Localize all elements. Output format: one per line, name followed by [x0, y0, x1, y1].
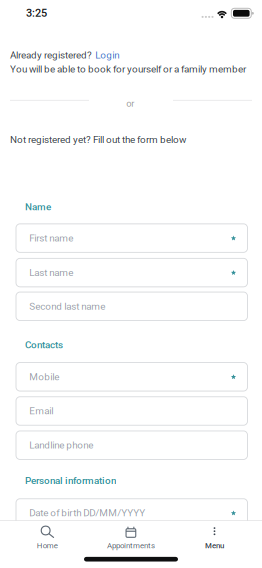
button[interactable]: Mobile: [16, 363, 247, 391]
staticText: Home: [37, 541, 58, 550]
button[interactable]: Menu: [175, 521, 262, 568]
button[interactable]: Appointments: [87, 521, 175, 568]
staticText: Personal information: [25, 475, 116, 486]
staticText: Name: [25, 201, 51, 213]
staticText: Already registered?: [10, 49, 92, 61]
staticText: You will be able to book for yourself or…: [10, 63, 246, 75]
staticText: Appointments: [107, 541, 155, 550]
staticText: Menu: [205, 541, 224, 550]
button[interactable]: Landline phone: [16, 431, 247, 459]
button[interactable]: Second last name: [16, 292, 247, 321]
staticText: Landline phone: [29, 439, 93, 451]
button[interactable]: Date of birth DD/MM/YYYY: [16, 499, 247, 527]
staticText: Not registered yet? Fill out the form be…: [10, 134, 186, 145]
staticText: Date of birth DD/MM/YYYY: [29, 507, 145, 519]
staticText: Login: [95, 49, 119, 61]
button[interactable]: Email: [16, 397, 247, 425]
button[interactable]: Login: [95, 49, 119, 61]
staticText: Contacts: [25, 339, 63, 351]
staticText: Last name: [29, 267, 73, 278]
button[interactable]: First name: [16, 224, 247, 252]
staticText: Second last name: [29, 300, 105, 312]
staticText: First name: [29, 232, 73, 244]
button[interactable]: Home: [0, 521, 87, 568]
staticText: 3:25: [26, 7, 47, 19]
staticText: Email: [29, 405, 53, 417]
button[interactable]: Last name: [16, 258, 247, 287]
staticText: Mobile: [29, 371, 59, 383]
staticText: or: [126, 98, 134, 109]
